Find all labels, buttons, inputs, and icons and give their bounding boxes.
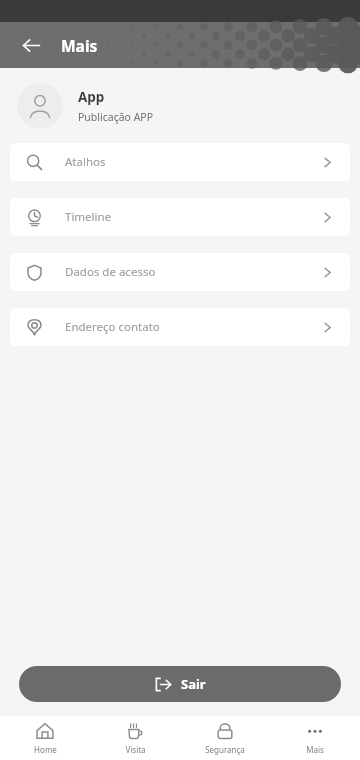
staticText: Mais: [306, 744, 324, 755]
staticText: Endereço contato: [65, 319, 160, 335]
button[interactable]: Home: [0, 716, 90, 760]
button[interactable]: Visita: [90, 716, 180, 760]
staticText: Home: [34, 744, 57, 755]
staticText: Publicação APP: [78, 110, 154, 124]
staticText: Segurança: [205, 744, 245, 755]
button[interactable]: Segurança: [180, 716, 270, 760]
button[interactable]: Sair: [19, 666, 341, 702]
staticText: Timeline: [65, 209, 112, 225]
staticText: Sair: [181, 675, 206, 693]
button[interactable]: Atalhos: [10, 143, 350, 181]
staticText: App: [78, 88, 105, 106]
staticText: Atalhos: [65, 154, 106, 170]
button[interactable]: Endereço contato: [10, 308, 350, 346]
staticText: Dados de acesso: [65, 264, 156, 280]
staticText: Visita: [125, 744, 146, 755]
button[interactable]: Dados de acesso: [10, 253, 350, 291]
staticText: Mais: [61, 35, 98, 56]
button[interactable]: Mais: [270, 716, 360, 760]
button[interactable]: Timeline: [10, 198, 350, 236]
button[interactable]: Back: [14, 28, 48, 62]
